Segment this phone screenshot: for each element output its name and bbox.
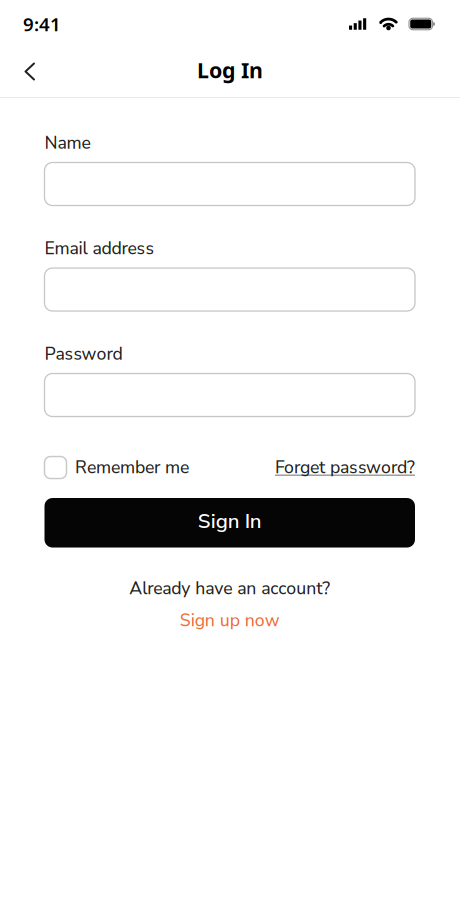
button[interactable]: Forget password?	[275, 455, 415, 479]
textField[interactable]	[44, 172, 415, 196]
staticText: Sign up now	[180, 608, 280, 632]
staticText: 9:41	[23, 12, 61, 36]
button[interactable]	[0, 53, 35, 90]
staticText: Forget password?	[275, 455, 415, 479]
staticText: Sign In	[198, 507, 262, 535]
textField[interactable]	[44, 277, 415, 301]
button[interactable]: Sign up now	[180, 608, 280, 632]
staticText: Log In	[197, 56, 263, 84]
button[interactable]: Remember me	[44, 455, 189, 479]
staticText: Name	[44, 131, 90, 155]
staticText: Password	[44, 342, 122, 366]
staticText: Email address	[44, 236, 154, 260]
button[interactable]: Sign In	[44, 498, 415, 547]
textField[interactable]	[44, 383, 415, 407]
staticText: Already have an account?	[129, 576, 330, 600]
staticText: Remember me	[75, 455, 189, 479]
